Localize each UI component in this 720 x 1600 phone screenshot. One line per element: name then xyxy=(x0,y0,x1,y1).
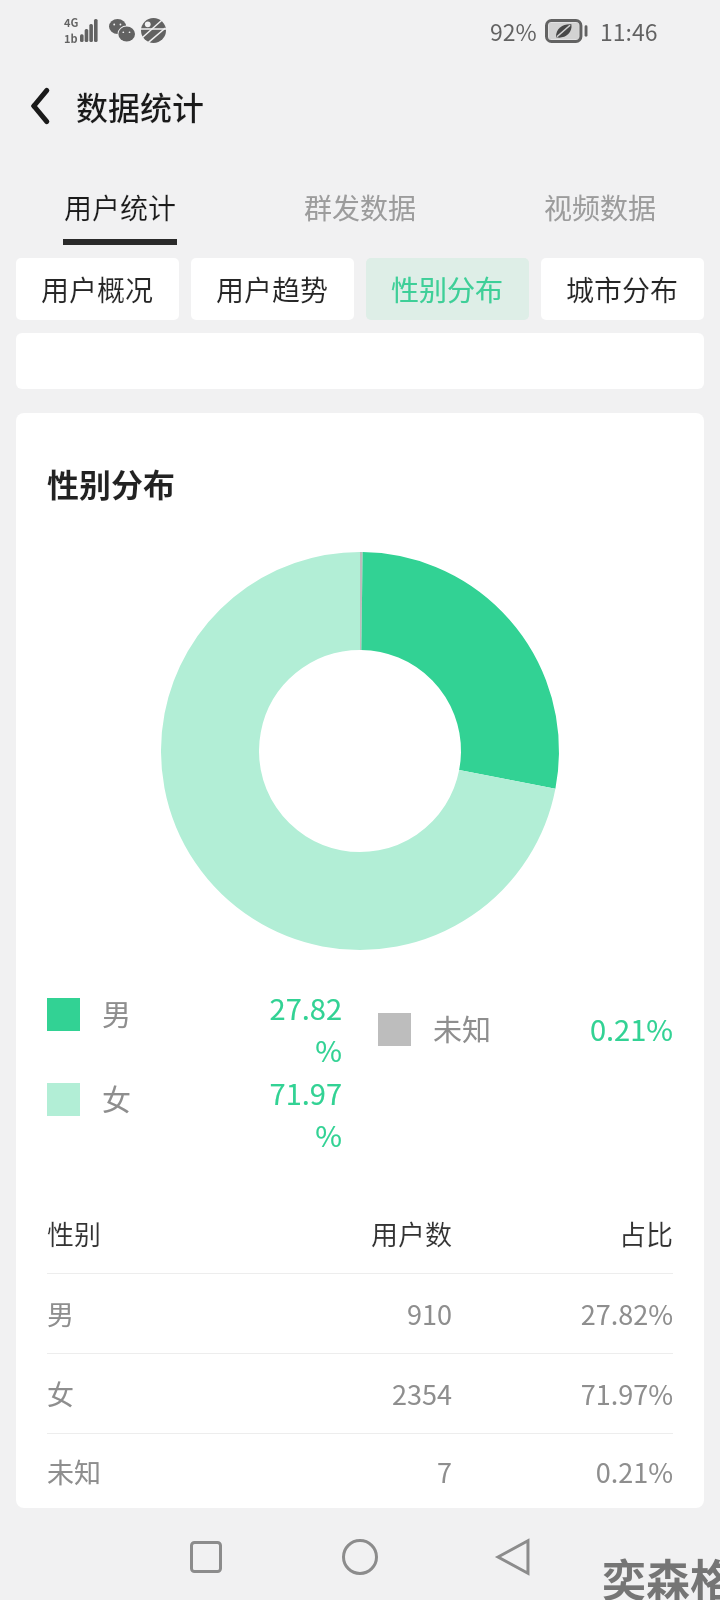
staticText: 视频数据 xyxy=(544,187,657,228)
staticText: 数据统计 xyxy=(76,83,205,129)
button[interactable]: 男 xyxy=(47,1274,673,1353)
button[interactable]: 视频数据 xyxy=(480,152,720,242)
staticText: % xyxy=(224,1113,342,1155)
button[interactable]: 未知 xyxy=(47,1434,673,1508)
staticText: 性别 xyxy=(47,1214,187,1253)
button[interactable]: 女 xyxy=(47,1354,673,1433)
staticText: 2354 xyxy=(187,1374,452,1413)
staticText: 用户概况 xyxy=(41,269,154,310)
button[interactable]: Back xyxy=(18,82,66,130)
button[interactable]: Home xyxy=(330,1527,390,1587)
staticText: 女 xyxy=(102,1077,224,1119)
button[interactable]: 群发数据 xyxy=(240,152,480,242)
staticText: 未知 xyxy=(47,1452,187,1491)
staticText: 男 xyxy=(47,1294,187,1333)
staticText: 27.82 xyxy=(224,986,342,1028)
button[interactable]: 用户概况 xyxy=(16,258,179,320)
staticText: 用户统计 xyxy=(64,187,177,228)
staticText: 未知 xyxy=(433,1007,563,1049)
staticText: 1b xyxy=(64,30,78,46)
staticText: 奕森格 xyxy=(602,1546,720,1600)
button[interactable]: Recents xyxy=(176,1527,236,1587)
staticText: 11:46 xyxy=(600,14,658,47)
button[interactable]: 用户趋势 xyxy=(191,258,354,320)
staticText: 用户数 xyxy=(187,1214,452,1253)
staticText: 910 xyxy=(187,1294,452,1333)
staticText: 4G xyxy=(64,14,79,30)
button[interactable]: 性别分布 xyxy=(366,258,529,320)
staticText: 0.21% xyxy=(563,1007,673,1049)
staticText: 71.97 xyxy=(224,1071,342,1113)
staticText: 性别分布 xyxy=(47,460,176,506)
staticText: 群发数据 xyxy=(304,187,417,228)
staticText: 城市分布 xyxy=(566,269,679,310)
staticText: 92% xyxy=(490,14,537,47)
staticText: 占比 xyxy=(452,1214,673,1253)
staticText: 7 xyxy=(187,1452,452,1491)
staticText: 女 xyxy=(47,1374,187,1413)
staticText: 性别分布 xyxy=(391,269,504,310)
staticText: % xyxy=(224,1028,342,1070)
staticText: 用户趋势 xyxy=(216,269,329,310)
staticText: 男 xyxy=(102,992,224,1034)
staticText: 71.97% xyxy=(452,1374,673,1413)
staticText: 27.82% xyxy=(452,1294,673,1333)
staticText: 0.21% xyxy=(452,1452,673,1491)
button[interactable]: Back xyxy=(483,1527,543,1587)
button[interactable]: 用户统计 xyxy=(0,152,240,242)
button[interactable]: 城市分布 xyxy=(541,258,704,320)
